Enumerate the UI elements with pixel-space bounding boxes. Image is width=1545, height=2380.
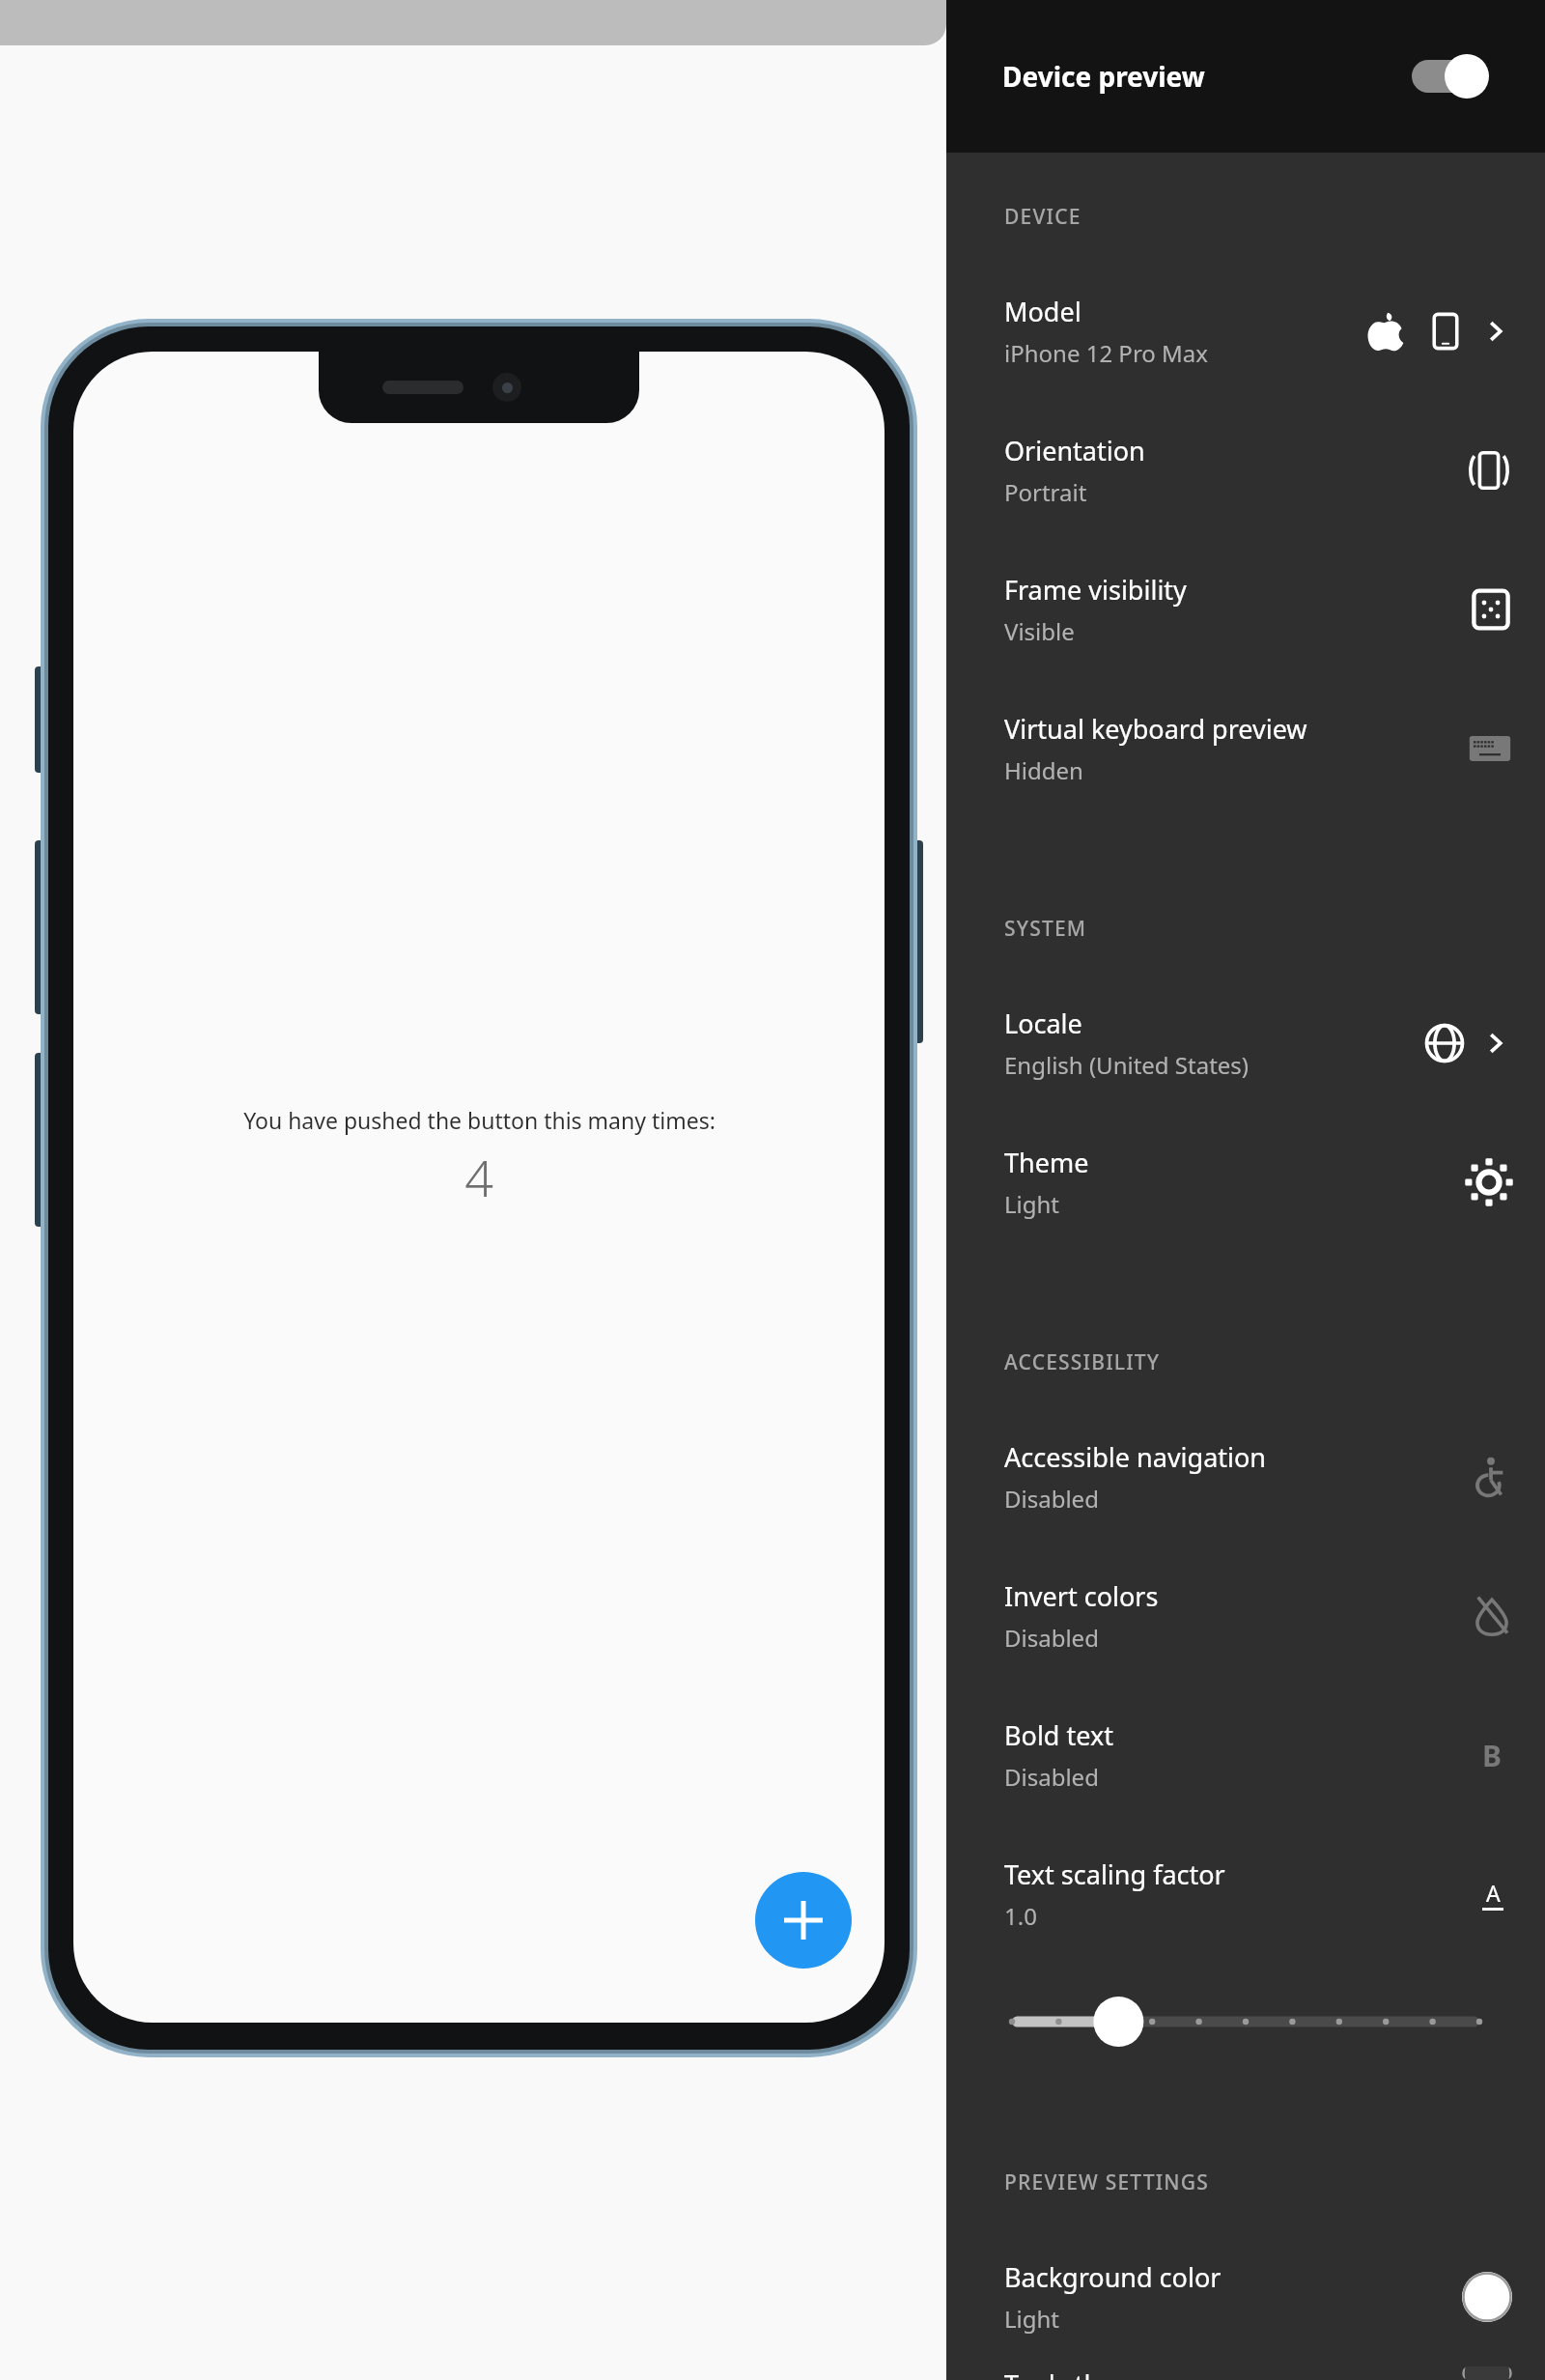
button[interactable]: Model (946, 262, 1545, 401)
staticText: Light (1004, 1188, 1060, 1220)
staticText: Accessible navigation (1004, 1439, 1267, 1475)
button[interactable]: Toggle device preview (1408, 50, 1489, 102)
staticText: Bold text (1004, 1717, 1113, 1753)
staticText: Virtual keyboard preview (1004, 711, 1307, 747)
staticText: B (1482, 1736, 1502, 1775)
staticText: Invert colors (1004, 1578, 1159, 1614)
staticText: Orientation (1004, 433, 1145, 468)
button[interactable]: Background color (946, 2227, 1545, 2366)
button[interactable]: Virtual keyboard preview (946, 679, 1545, 818)
staticText: Tools theme (1004, 2366, 1154, 2380)
staticText: Text scaling factor (1004, 1856, 1225, 1892)
button[interactable]: Locale (946, 974, 1545, 1113)
button[interactable]: Increment (755, 1872, 852, 1969)
button[interactable]: Bold text (946, 1686, 1545, 1825)
staticText: Background color (1004, 2259, 1222, 2295)
staticText: Theme (1004, 1145, 1089, 1180)
button[interactable]: Theme (946, 1113, 1545, 1252)
staticText: DEVICE (1004, 203, 1081, 231)
staticText: English (United States) (1004, 1049, 1250, 1081)
staticText: You have pushed the button this many tim… (243, 1105, 716, 1135)
staticText: Device preview (1002, 58, 1205, 95)
staticText: SYSTEM (1004, 915, 1087, 943)
staticText: 4 (464, 1143, 493, 1211)
staticText: A (1486, 1878, 1501, 1908)
staticText: Visible (1004, 615, 1075, 647)
staticText: Light (1004, 2303, 1060, 2335)
button[interactable]: Text scaling factor slider (1012, 1964, 1479, 2080)
button[interactable]: Text scaling factor (946, 1825, 1545, 1964)
staticText: PREVIEW SETTINGS (1004, 2168, 1210, 2196)
staticText: Disabled (1004, 1622, 1099, 1654)
button[interactable]: Pick colour (1462, 2272, 1512, 2322)
button[interactable]: Tools theme (946, 2366, 1545, 2380)
staticText: Locale (1004, 1006, 1082, 1041)
button[interactable]: Orientation (946, 401, 1545, 540)
button[interactable]: Accessible navigation (946, 1407, 1545, 1546)
button[interactable]: Frame visibility (946, 540, 1545, 679)
staticText: iPhone 12 Pro Max (1004, 337, 1209, 369)
button[interactable]: Pick colour (1462, 2366, 1512, 2380)
staticText: 1.0 (1004, 1900, 1037, 1932)
staticText: Disabled (1004, 1761, 1099, 1793)
staticText: Frame visibility (1004, 572, 1187, 608)
staticText: Model (1004, 294, 1081, 329)
staticText: Disabled (1004, 1483, 1099, 1515)
button[interactable]: Invert colors (946, 1546, 1545, 1686)
staticText: Hidden (1004, 754, 1083, 786)
staticText: Portrait (1004, 476, 1087, 508)
staticText: ACCESSIBILITY (1004, 1348, 1161, 1376)
